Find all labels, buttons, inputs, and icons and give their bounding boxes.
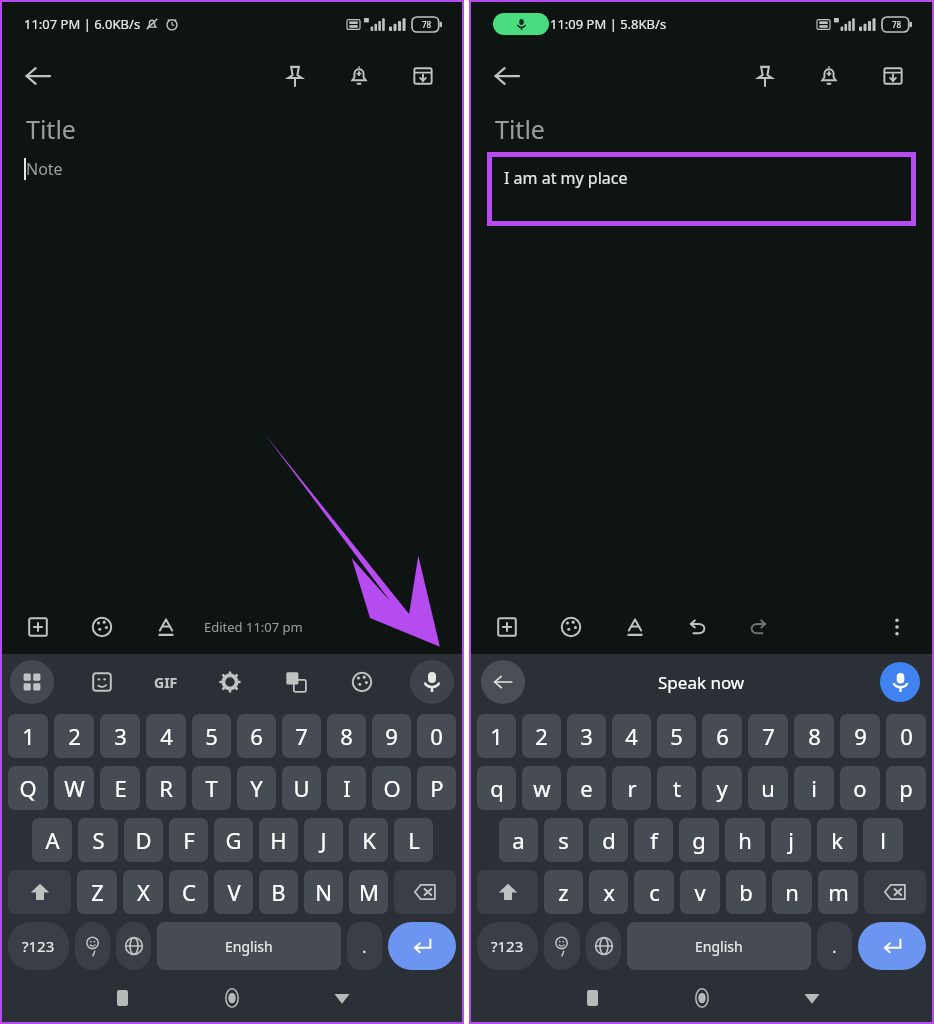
button[interactable]: 6: [702, 714, 742, 758]
button[interactable]: V: [214, 870, 253, 914]
button[interactable]: H: [259, 818, 298, 862]
button[interactable]: 1: [8, 714, 48, 758]
button[interactable]: 9: [840, 714, 880, 758]
button[interactable]: q: [477, 766, 516, 810]
button[interactable]: Note: [2, 146, 462, 180]
button[interactable]: 2: [54, 714, 94, 758]
button[interactable]: x: [589, 870, 628, 914]
button[interactable]: Backspace: [394, 870, 456, 914]
button[interactable]: Home: [685, 981, 719, 1015]
button[interactable]: N: [304, 870, 343, 914]
button[interactable]: 8: [327, 714, 366, 758]
button[interactable]: z: [544, 870, 583, 914]
button[interactable]: Recents: [105, 981, 139, 1015]
button[interactable]: b: [726, 870, 766, 914]
button[interactable]: ?123: [8, 922, 69, 970]
button[interactable]: P: [417, 766, 456, 810]
button[interactable]: U: [282, 766, 321, 810]
button[interactable]: Enter: [858, 922, 926, 970]
button[interactable]: W: [54, 766, 94, 810]
button[interactable]: Emoji: [544, 922, 580, 970]
button[interactable]: Back: [481, 660, 525, 704]
button[interactable]: d: [589, 818, 628, 862]
button[interactable]: 2: [522, 714, 561, 758]
button[interactable]: Formatting: [617, 609, 653, 645]
button[interactable]: Y: [237, 766, 276, 810]
button[interactable]: F: [169, 818, 208, 862]
button[interactable]: Shift: [8, 870, 71, 914]
button[interactable]: Shift: [477, 870, 538, 914]
button[interactable]: Translate: [278, 664, 314, 700]
button[interactable]: i: [794, 766, 834, 810]
button[interactable]: .: [347, 922, 382, 970]
button[interactable]: h: [725, 818, 765, 862]
button[interactable]: G: [214, 818, 253, 862]
button[interactable]: Add reminder: [810, 57, 848, 95]
button[interactable]: More options: [410, 610, 444, 644]
button[interactable]: Pin: [276, 57, 314, 95]
button[interactable]: C: [169, 870, 208, 914]
button[interactable]: r: [612, 766, 651, 810]
button[interactable]: O: [372, 766, 411, 810]
button[interactable]: Backspace: [864, 870, 926, 914]
button[interactable]: English: [627, 922, 811, 970]
button[interactable]: y: [702, 766, 742, 810]
button[interactable]: B: [259, 870, 298, 914]
button[interactable]: E: [100, 766, 140, 810]
button[interactable]: f: [634, 818, 673, 862]
button[interactable]: 3: [567, 714, 606, 758]
button[interactable]: u: [748, 766, 788, 810]
button[interactable]: Add reminder: [340, 57, 378, 95]
button[interactable]: R: [146, 766, 186, 810]
button[interactable]: 0: [886, 714, 926, 758]
button[interactable]: p: [886, 766, 926, 810]
button[interactable]: 1: [477, 714, 516, 758]
button[interactable]: Home: [215, 981, 249, 1015]
button[interactable]: Z: [77, 870, 117, 914]
button[interactable]: More options: [880, 610, 914, 644]
button[interactable]: Recents: [575, 981, 609, 1015]
button[interactable]: l: [863, 818, 903, 862]
button[interactable]: Back: [325, 981, 359, 1015]
button[interactable]: w: [522, 766, 561, 810]
button[interactable]: T: [192, 766, 231, 810]
button[interactable]: Title: [471, 106, 932, 146]
button[interactable]: t: [657, 766, 696, 810]
button[interactable]: m: [818, 870, 858, 914]
button[interactable]: Formatting: [148, 609, 184, 645]
button[interactable]: j: [771, 818, 811, 862]
button[interactable]: e: [567, 766, 606, 810]
button[interactable]: a: [499, 818, 538, 862]
button[interactable]: 5: [192, 714, 231, 758]
button[interactable]: I am at my place: [492, 157, 911, 221]
button[interactable]: 5: [657, 714, 696, 758]
button[interactable]: Archive: [404, 57, 442, 95]
button[interactable]: 4: [146, 714, 186, 758]
button[interactable]: 7: [282, 714, 321, 758]
button[interactable]: English: [157, 922, 341, 970]
button[interactable]: Stickers: [84, 664, 120, 700]
button[interactable]: Theme: [344, 664, 380, 700]
button[interactable]: n: [772, 870, 812, 914]
button[interactable]: Back: [485, 54, 529, 98]
button[interactable]: Pin: [746, 57, 784, 95]
button[interactable]: Title: [2, 106, 462, 146]
button[interactable]: GIF: [150, 669, 182, 696]
button[interactable]: Back: [16, 54, 60, 98]
button[interactable]: Change language: [116, 922, 151, 970]
button[interactable]: J: [304, 818, 343, 862]
button[interactable]: 7: [748, 714, 788, 758]
button[interactable]: Q: [8, 766, 48, 810]
button[interactable]: D: [124, 818, 163, 862]
button[interactable]: I: [327, 766, 366, 810]
button[interactable]: Change language: [586, 922, 621, 970]
button[interactable]: Add: [489, 609, 525, 645]
button[interactable]: v: [680, 870, 720, 914]
button[interactable]: Add: [20, 609, 56, 645]
button[interactable]: M: [349, 870, 388, 914]
button[interactable]: g: [679, 818, 719, 862]
button[interactable]: 0: [417, 714, 456, 758]
button[interactable]: Emoji: [75, 922, 110, 970]
button[interactable]: k: [817, 818, 857, 862]
button[interactable]: s: [544, 818, 583, 862]
